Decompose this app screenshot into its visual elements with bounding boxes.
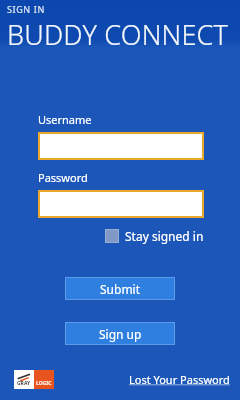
button[interactable]: Submit <box>65 277 175 300</box>
button[interactable]: Sign up <box>65 322 175 345</box>
button[interactable] <box>38 132 204 160</box>
staticText: GRAY <box>17 380 31 387</box>
button[interactable]: Gray Logic logo <box>14 370 54 389</box>
staticText: Password <box>38 170 88 185</box>
staticText: Stay signed in <box>125 228 204 244</box>
button[interactable] <box>38 190 204 218</box>
staticText: Sign up <box>99 326 142 342</box>
staticText: SIGN IN <box>7 3 45 15</box>
button[interactable]: Stay signed in <box>105 226 204 246</box>
staticText: LOGIC <box>36 380 52 387</box>
staticText: Submit <box>100 281 141 297</box>
staticText: Lost Your Password <box>129 372 230 387</box>
button[interactable]: Lost Your Password <box>127 369 232 390</box>
staticText: BUDDY CONNECT <box>7 16 229 48</box>
staticText: Username <box>38 112 92 127</box>
